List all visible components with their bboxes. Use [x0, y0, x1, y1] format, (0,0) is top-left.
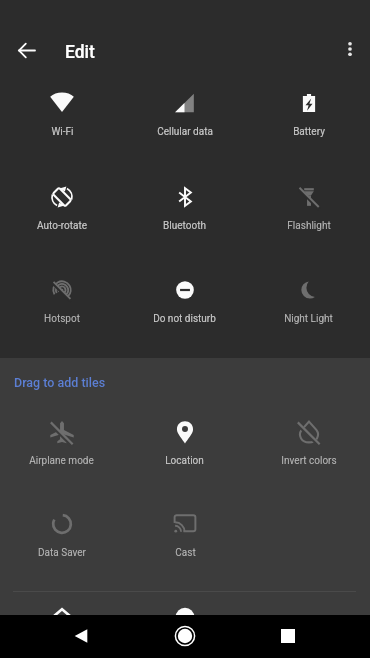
button[interactable]: Recent apps — [264, 614, 312, 657]
button[interactable]: Cast — [123, 511, 246, 569]
staticText: Edit — [65, 42, 95, 63]
staticText: Flashlight — [287, 220, 331, 232]
staticText: Battery — [293, 126, 325, 138]
staticText: Drag to add tiles — [14, 375, 106, 390]
button[interactable]: Battery — [247, 90, 370, 148]
staticText: Do not disturb — [153, 313, 216, 325]
staticText: Airplane mode — [29, 455, 94, 467]
button[interactable]: Invert colors — [247, 419, 370, 477]
staticText: Data Saver — [38, 547, 86, 559]
button[interactable]: Data Saver — [0, 511, 123, 569]
button[interactable]: Wi-Fi — [0, 90, 123, 148]
staticText: Auto-rotate — [37, 220, 87, 232]
staticText: Night Light — [284, 313, 333, 325]
button[interactable]: Auto-rotate — [0, 184, 123, 242]
staticText: Hotspot — [44, 313, 80, 325]
button[interactable]: Cellular data — [123, 90, 246, 148]
button[interactable]: Navigate up — [2, 26, 50, 74]
button[interactable]: Home — [161, 614, 209, 657]
button[interactable]: Hotspot — [0, 277, 123, 335]
staticText: Bluetooth — [163, 220, 206, 232]
staticText: Invert colors — [281, 455, 337, 467]
button[interactable]: Location — [123, 419, 246, 477]
staticText: Wi-Fi — [51, 126, 74, 138]
button[interactable]: Airplane mode — [0, 419, 123, 477]
staticText: Cast — [175, 547, 196, 559]
button[interactable]: Back — [57, 614, 105, 657]
staticText: Cellular data — [157, 126, 213, 138]
button[interactable]: More options — [328, 27, 370, 71]
button[interactable]: Flashlight — [247, 184, 370, 242]
button[interactable]: Do not disturb — [123, 277, 246, 335]
button[interactable]: Bluetooth — [123, 184, 246, 242]
staticText: Location — [165, 455, 204, 467]
button[interactable]: Night Light — [247, 277, 370, 335]
